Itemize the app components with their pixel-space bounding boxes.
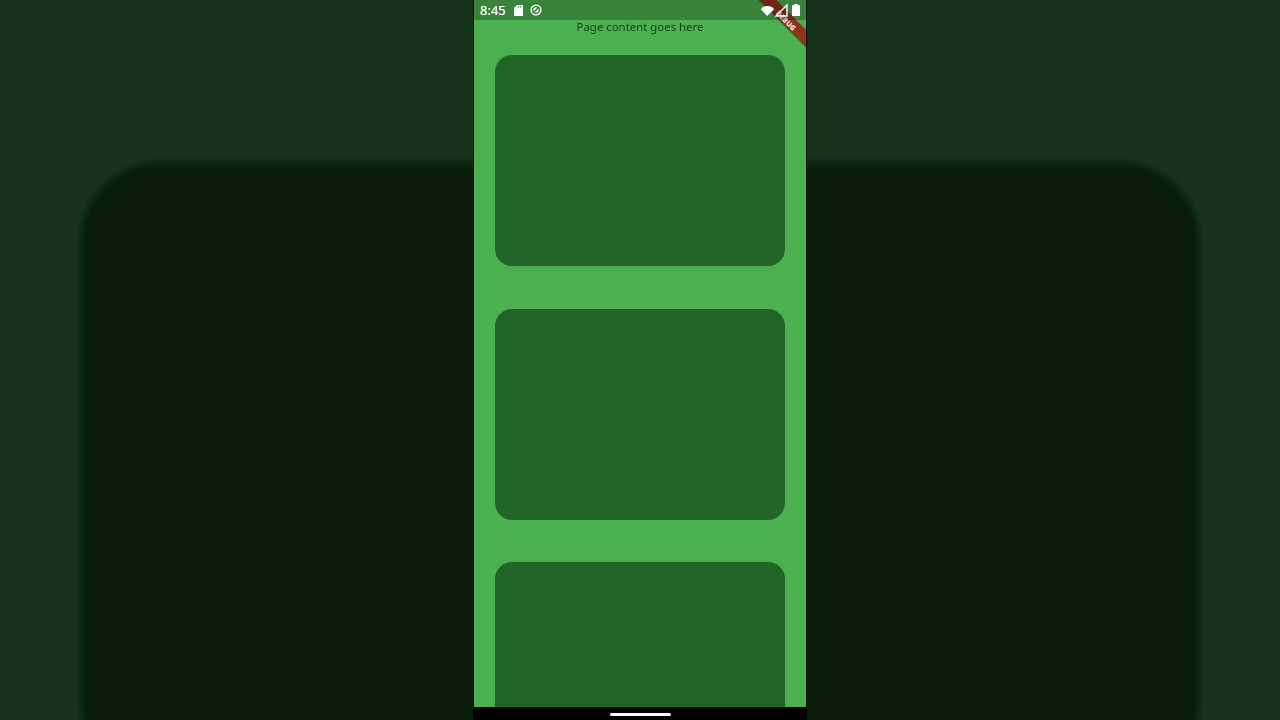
staticText: DEBUG [774,9,798,33]
button[interactable]: Content card [495,562,785,707]
other: Mobile signal [776,5,787,16]
other: Wi-Fi [761,5,774,16]
button[interactable]: Content card [495,309,785,520]
other: Battery [792,4,800,16]
button[interactable]: Home [610,713,671,716]
other: SD card [514,5,523,16]
button[interactable]: Content card [495,55,785,266]
staticText: 8:45 [480,1,506,19]
other: Auto-rotate off [530,4,542,16]
staticText: Page content goes here [473,19,807,35]
